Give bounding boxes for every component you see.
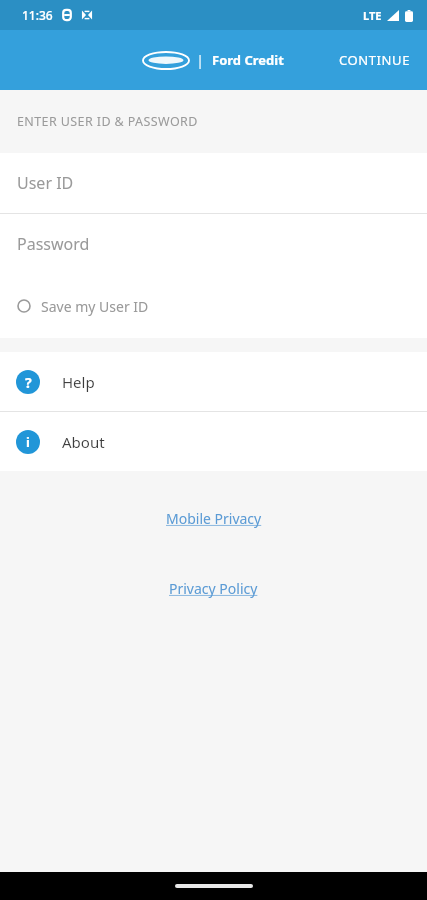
staticText: Password (17, 233, 90, 255)
button[interactable]: Password (0, 214, 427, 274)
staticText: ? (25, 373, 32, 392)
staticText: CONTINUE (339, 51, 411, 69)
button[interactable]: Mobile Privacy (154, 503, 274, 534)
staticText: | (196, 50, 205, 70)
button[interactable]: Privacy Policy (157, 573, 270, 604)
staticText: LTE (363, 8, 382, 23)
staticText: Ford Credit (212, 51, 284, 69)
staticText: Mobile Privacy (166, 509, 262, 528)
staticText: Save my User ID (41, 297, 149, 316)
staticText: About (62, 432, 105, 452)
button[interactable]: ? (0, 352, 427, 411)
button[interactable]: User ID (0, 153, 427, 213)
staticText: Privacy Policy (169, 579, 258, 598)
staticText: i (26, 433, 30, 451)
button[interactable]: CONTINUE (323, 39, 427, 81)
staticText: Help (62, 372, 95, 392)
other: Home gesture (175, 884, 253, 888)
button[interactable]: Save my User ID (0, 274, 427, 338)
staticText: ENTER USER ID & PASSWORD (17, 113, 198, 130)
staticText: User ID (17, 172, 74, 194)
staticText: 11:36 (22, 7, 53, 23)
button[interactable]: i (0, 412, 427, 471)
